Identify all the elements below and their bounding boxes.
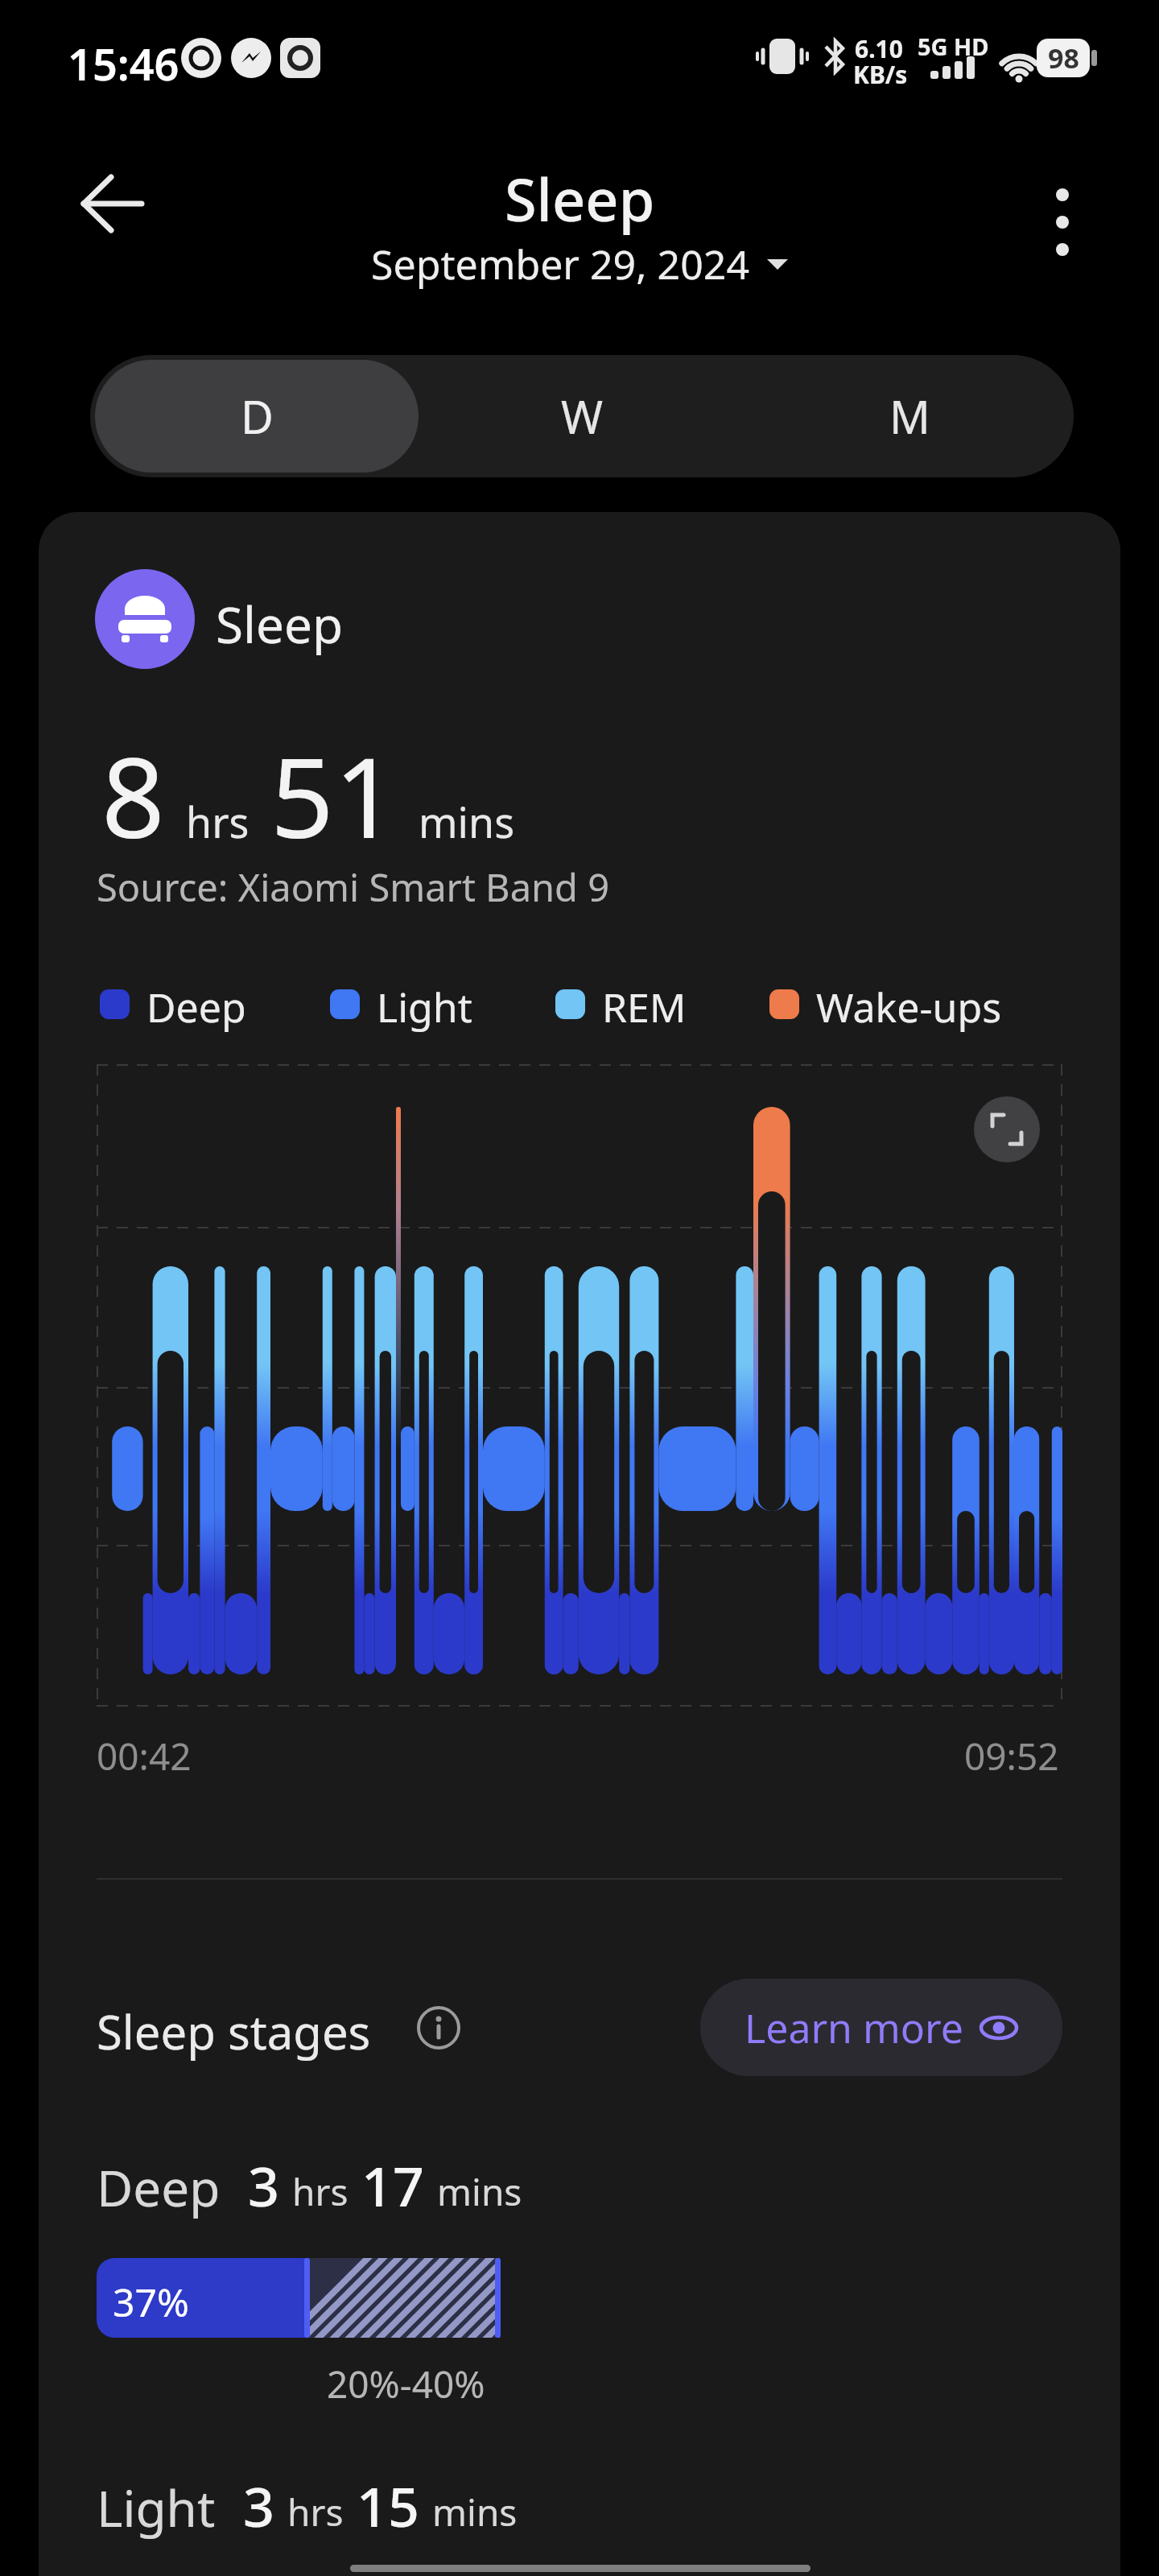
staticText: 3	[248, 2148, 279, 2223]
button[interactable]: D	[95, 360, 419, 473]
staticText: September 29, 2024	[371, 237, 749, 291]
staticText: Light	[97, 2474, 216, 2541]
staticText: Deep	[97, 2153, 221, 2221]
staticText: W	[561, 386, 604, 447]
staticText: mins	[437, 2166, 522, 2217]
staticText: 15	[357, 2468, 419, 2543]
staticText: 51	[270, 719, 398, 870]
staticText: Sleep	[505, 159, 655, 238]
staticText: 20%-40%	[327, 2359, 485, 2409]
staticText: KB/s	[853, 58, 908, 91]
staticText: Learn more	[744, 2000, 963, 2055]
staticText: 5G HD	[918, 31, 989, 62]
staticText: mins	[419, 793, 515, 850]
staticText: 17	[361, 2148, 424, 2223]
staticText: 3	[243, 2468, 274, 2543]
staticText: Deep	[146, 980, 246, 1034]
staticText: hrs	[186, 793, 250, 850]
button[interactable]: September 29, 2024	[371, 237, 788, 291]
staticText: 8	[101, 719, 165, 870]
staticText: 09:52	[964, 1731, 1059, 1781]
staticText: M	[889, 386, 930, 447]
staticText: hrs	[287, 2487, 344, 2537]
button[interactable]: Learn more	[700, 1979, 1062, 2076]
button[interactable]	[966, 1088, 1048, 1170]
staticText: REM	[602, 980, 687, 1034]
staticText: mins	[432, 2487, 518, 2537]
staticText: Light	[377, 980, 472, 1034]
button[interactable]	[1043, 185, 1082, 262]
staticText: 37%	[113, 2276, 189, 2328]
staticText: D	[241, 386, 274, 447]
staticText: 6.10	[855, 32, 903, 65]
staticText: 15:46	[68, 34, 179, 93]
staticText: Source: Xiaomi Smart Band 9	[97, 861, 610, 913]
staticText: 00:42	[97, 1731, 192, 1781]
staticText: hrs	[292, 2166, 349, 2217]
staticText: 98	[1048, 39, 1079, 76]
button[interactable]: M	[746, 355, 1074, 477]
staticText: Sleep stages	[97, 2000, 371, 2063]
button[interactable]	[77, 173, 145, 234]
staticText: Wake-ups	[816, 980, 1002, 1034]
staticText: Sleep	[216, 590, 344, 658]
button[interactable]: W	[419, 355, 746, 477]
